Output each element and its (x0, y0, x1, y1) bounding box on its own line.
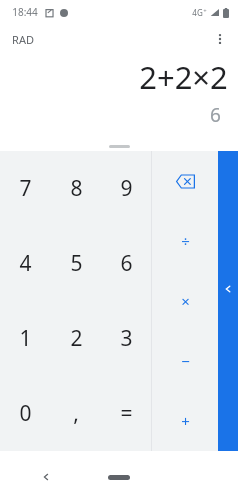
button[interactable]: 3 (101, 301, 151, 376)
button[interactable]: 7 (0, 151, 51, 226)
button[interactable]: 6 (101, 226, 151, 301)
staticText: 8 (70, 174, 83, 203)
button[interactable]: ÷ (152, 211, 218, 271)
button[interactable]: 4 (0, 226, 51, 301)
button[interactable]: Backspace (152, 151, 218, 211)
button[interactable]: 2 (51, 301, 101, 376)
staticText: 5 (70, 249, 83, 278)
staticText: = (120, 399, 133, 428)
staticText: 1 (19, 324, 32, 353)
button[interactable]: 8 (51, 151, 101, 226)
staticText: 0 (19, 399, 32, 428)
staticText: 18:44 (12, 5, 38, 19)
button[interactable]: More options (202, 24, 238, 54)
staticText: 2+2×2 (139, 56, 228, 98)
staticText: + (203, 7, 207, 15)
staticText: 6 (210, 102, 221, 128)
other: Backspace (174, 170, 196, 192)
button[interactable]: , (51, 376, 101, 451)
staticText: 4 (19, 249, 32, 278)
button[interactable]: Expand advanced pad (218, 151, 238, 451)
button[interactable]: Home (108, 475, 130, 480)
button[interactable]: 9 (101, 151, 151, 226)
button[interactable]: 1 (0, 301, 51, 376)
staticText: × (181, 291, 190, 311)
staticText: + (181, 411, 190, 431)
staticText: 9 (120, 174, 133, 203)
staticText: , (73, 399, 79, 428)
button[interactable]: RAD (0, 27, 46, 52)
staticText: ÷ (181, 231, 190, 251)
staticText: RAD (12, 32, 34, 47)
staticText: 3 (120, 324, 133, 353)
staticText: 2 (70, 324, 83, 353)
button[interactable]: × (152, 271, 218, 331)
button[interactable]: + (152, 391, 218, 451)
button[interactable]: 5 (51, 226, 101, 301)
button[interactable]: Back (34, 465, 58, 489)
button[interactable]: 0 (0, 376, 51, 451)
staticText: − (181, 351, 190, 371)
staticText: 6 (120, 249, 133, 278)
button[interactable]: − (152, 331, 218, 391)
staticText: 4G (192, 7, 203, 18)
button[interactable]: = (101, 376, 151, 451)
staticText: 7 (19, 174, 32, 203)
